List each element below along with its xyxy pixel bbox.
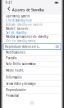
button[interactable]: Model: Generic bbox=[3, 27, 61, 35]
staticText: Mostrar aplicaciones de standby bbox=[6, 35, 48, 38]
staticText: Check Standby hub bbox=[6, 19, 32, 22]
button[interactable]: Servar datos y descarga bbox=[3, 81, 61, 87]
button[interactable]: Información bbox=[3, 74, 61, 80]
button[interactable]: Toggle bbox=[54, 45, 59, 48]
button[interactable]: Back bbox=[7, 6, 12, 14]
button[interactable]: Solo Brillo automático bbox=[3, 61, 61, 67]
staticText: Modo noche bbox=[6, 69, 24, 72]
staticText: Reproducción bbox=[6, 88, 26, 92]
staticText: Model: Generic bbox=[6, 27, 28, 30]
button[interactable]: Operating system bbox=[3, 14, 61, 22]
staticText: Ajustes de Standby bbox=[12, 7, 44, 12]
staticText: Ver en standby mode bbox=[6, 39, 36, 43]
button[interactable]: Notificaciones bbox=[3, 50, 61, 55]
staticText: Activate standby on mobile bbox=[6, 23, 43, 26]
staticText: Notificaciones bbox=[6, 51, 25, 54]
staticText: Reproducir vídeos en s… bbox=[5, 45, 40, 48]
button[interactable]: Reproducción bbox=[3, 87, 61, 93]
button[interactable]: Pantalla bbox=[3, 55, 61, 61]
staticText: Privacidad bbox=[6, 94, 19, 97]
staticText: Información bbox=[6, 76, 22, 79]
button[interactable]: Activate standby on mobile bbox=[3, 23, 61, 27]
staticText: 9:41 bbox=[5, 1, 12, 4]
staticText: Set de standby bbox=[6, 31, 26, 34]
button[interactable]: Modo noche bbox=[3, 67, 61, 74]
staticText: Servar datos y descarga bbox=[6, 82, 35, 85]
staticText: Pantalla bbox=[6, 56, 16, 60]
staticText: Solo Brillo automático bbox=[6, 62, 36, 66]
staticText: Operating system bbox=[6, 15, 29, 18]
button[interactable]: Privacidad bbox=[3, 93, 61, 98]
